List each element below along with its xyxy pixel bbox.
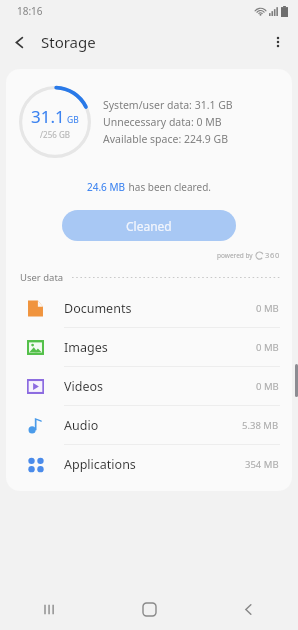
staticText: Videos — [64, 378, 104, 395]
button[interactable]: Applications — [6, 445, 292, 483]
staticText: Cleaned — [126, 218, 172, 234]
staticText: has been cleared. — [126, 180, 212, 194]
staticText: Available space: 224.9 GB — [103, 132, 228, 146]
button[interactable]: Back — [199, 588, 298, 630]
staticText: 0 MB — [256, 380, 279, 393]
button[interactable]: Audio — [6, 406, 292, 444]
staticText: GB — [67, 114, 79, 126]
staticText: Applications — [64, 456, 136, 473]
button[interactable]: Images — [6, 328, 292, 366]
button[interactable]: More options — [258, 22, 298, 62]
staticText: Storage — [41, 32, 96, 52]
staticText: 24.6 MB — [87, 180, 126, 194]
staticText: 0 MB — [256, 302, 279, 315]
staticText: Unnecessary data: 0 MB — [103, 115, 222, 129]
button[interactable]: Home — [100, 588, 199, 630]
button[interactable]: Cleaned — [62, 210, 236, 241]
button[interactable]: Videos — [6, 367, 292, 405]
staticText: 354 MB — [245, 458, 279, 471]
staticText: 360 — [265, 250, 280, 260]
button[interactable]: Back — [0, 23, 38, 61]
staticText: /256 GB — [40, 129, 70, 140]
staticText: 0 MB — [256, 341, 279, 354]
staticText: 31.1 — [31, 105, 65, 128]
button[interactable]: Recent apps — [0, 588, 100, 630]
staticText: User data — [20, 271, 64, 284]
staticText: Images — [64, 339, 108, 356]
staticText: 18:16 — [17, 4, 43, 18]
staticText: Audio — [64, 417, 99, 434]
staticText: powered by — [217, 251, 253, 260]
staticText: System/user data: 31.1 GB — [103, 98, 233, 112]
button[interactable]: Documents — [6, 289, 292, 327]
staticText: Documents — [64, 300, 132, 317]
staticText: 5.38 MB — [242, 419, 279, 432]
